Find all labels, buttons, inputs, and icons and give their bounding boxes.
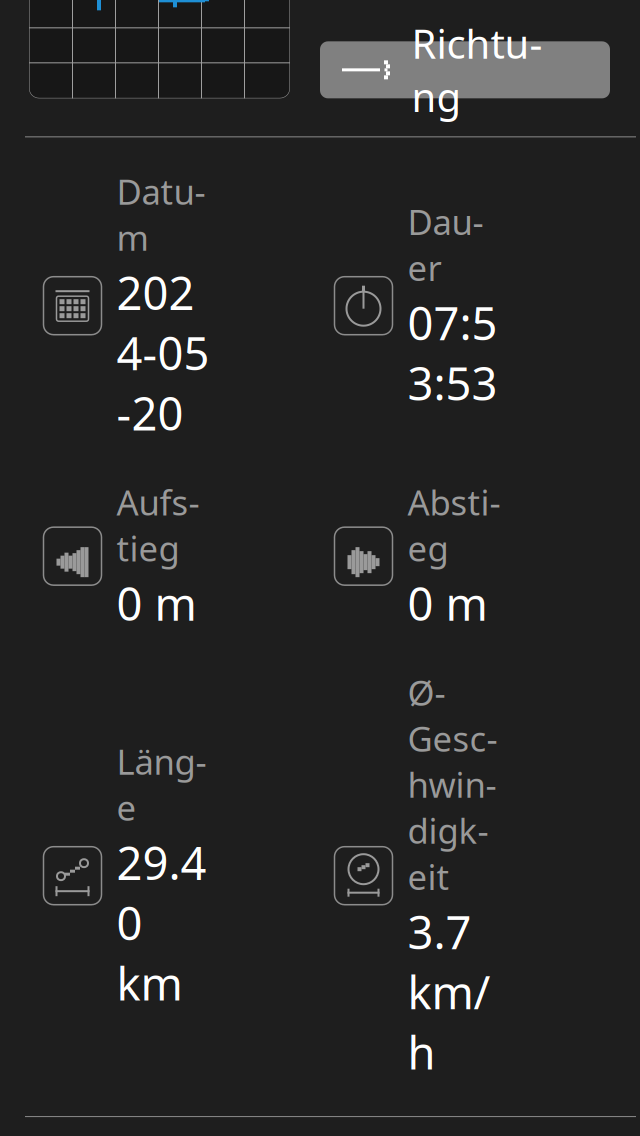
staticText: Ø-Geschwindigkeit [407,669,497,899]
staticText: 29.40 km [116,832,206,1013]
staticText: Länge [116,738,206,830]
staticText: 0 m [116,573,196,633]
button[interactable]: Richtung [320,41,610,98]
staticText: Abstieg [407,479,500,571]
staticText: 07:53:53 [407,292,497,413]
staticText: 3.7 km/h [407,901,490,1082]
staticText: Datum [116,168,205,260]
staticText: Richtung [411,17,542,123]
staticText: 0 m [407,573,487,633]
staticText: 2024-05-20 [116,262,209,443]
staticText: Aufstieg [116,479,199,571]
staticText: Dauer [407,198,483,290]
